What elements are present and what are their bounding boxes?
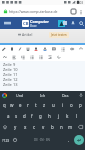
button[interactable]: ?123: [0, 133, 11, 147]
button[interactable]: k: [63, 110, 72, 121]
button[interactable]: l: [72, 110, 81, 121]
staticText: c: [33, 124, 36, 130]
button[interactable]: Backspace: [75, 121, 85, 133]
button[interactable]: a: [4, 110, 12, 121]
staticText: q: [3, 102, 6, 108]
button[interactable]: Paragraph tool 4: [27, 53, 36, 61]
button[interactable]: Jetzt testen: [49, 32, 69, 38]
button[interactable]: Format tool 4: [24, 45, 32, 53]
staticText: b: [51, 124, 54, 130]
button[interactable]: DE · IN · EN: [19, 133, 65, 147]
button[interactable]: e: [16, 99, 24, 110]
button[interactable]: d: [20, 110, 28, 121]
button[interactable]: Und: [8, 91, 31, 99]
button[interactable]: Enter: [72, 133, 85, 147]
staticText: z: [43, 102, 46, 108]
button[interactable]: Period: [65, 133, 72, 147]
button[interactable]: p: [76, 99, 85, 110]
button[interactable]: Tabs: [69, 7, 77, 15]
button[interactable]: m: [66, 121, 75, 133]
staticText: o: [70, 102, 73, 108]
staticText: s: [15, 113, 18, 119]
staticText: t: [35, 102, 37, 108]
button[interactable]: z: [40, 99, 49, 110]
staticText: i: [62, 102, 64, 108]
button[interactable]: Format tool 10: [76, 45, 85, 53]
staticText: Zeile 9: [3, 62, 16, 67]
button[interactable]: Search: [77, 19, 85, 27]
button[interactable]: Paragraph tool 7: [54, 53, 63, 61]
button[interactable]: Google Assistant: [0, 91, 8, 99]
staticText: h: [48, 113, 51, 119]
button[interactable]: Menu: [2, 18, 12, 28]
button[interactable]: c: [30, 121, 39, 133]
staticText: w: [10, 102, 14, 108]
button[interactable]: n: [57, 121, 66, 133]
button[interactable]: s: [12, 110, 20, 121]
button[interactable]: o: [67, 99, 76, 110]
button[interactable]: Format tool 9: [67, 45, 76, 53]
staticText: Computer: [30, 19, 49, 24]
button[interactable]: f: [28, 110, 36, 121]
staticText: ?123: [2, 138, 10, 143]
staticText: 10:03: [75, 1, 84, 5]
staticText: p: [79, 102, 82, 108]
button[interactable]: Format tool 7: [49, 45, 58, 53]
staticText: v: [42, 124, 45, 130]
button[interactable]: y: [10, 121, 20, 133]
button[interactable]: Ich: [31, 91, 54, 99]
button[interactable]: Account: [69, 19, 77, 27]
button[interactable]: Format tool 2: [8, 45, 16, 53]
staticText: r: [27, 102, 29, 108]
staticText: .: [68, 137, 70, 143]
button[interactable]: x: [20, 121, 30, 133]
button[interactable]: g: [36, 110, 45, 121]
staticText: Zeile 12: [3, 77, 18, 82]
staticText: Zeile 11: [3, 72, 18, 77]
button[interactable]: Format tool 5: [32, 45, 40, 53]
staticText: f: [31, 113, 33, 119]
staticText: x: [24, 124, 27, 130]
staticText: n: [60, 124, 63, 130]
button[interactable]: Format tool 8: [58, 45, 67, 53]
staticText: m: [68, 124, 73, 130]
button[interactable]: h: [45, 110, 54, 121]
button[interactable]: Paragraph tool 2: [9, 53, 18, 61]
button[interactable]: u: [49, 99, 58, 110]
button[interactable]: Voice input: [77, 91, 85, 99]
button[interactable]: Paragraph tool 1: [0, 53, 9, 61]
button[interactable]: Paragraph tool 5: [36, 53, 45, 61]
button[interactable]: Format tool 3: [16, 45, 24, 53]
button[interactable]: t: [32, 99, 40, 110]
button[interactable]: Shift: [0, 121, 10, 133]
button[interactable]: Sections: [61, 19, 69, 27]
button[interactable]: Format tool 6: [40, 45, 49, 53]
button[interactable]: Paragraph tool 6: [45, 53, 54, 61]
staticText: u: [52, 102, 55, 108]
button[interactable]: r: [24, 99, 32, 110]
staticText: d: [23, 113, 26, 119]
staticText: g: [39, 113, 42, 119]
staticText: Artikel: [22, 32, 33, 37]
button[interactable]: Emoji: [11, 133, 19, 147]
staticText: j: [58, 113, 60, 119]
staticText: Das: [62, 93, 69, 98]
staticText: https://www.computerbase.de: [9, 9, 58, 14]
button[interactable]: i: [58, 99, 67, 110]
button[interactable]: q: [0, 99, 8, 110]
button[interactable]: w: [8, 99, 16, 110]
button[interactable]: Das: [54, 91, 77, 99]
staticText: Base: [30, 24, 37, 28]
button[interactable]: Format tool 1: [0, 45, 8, 53]
button[interactable]: v: [39, 121, 48, 133]
button[interactable]: b: [48, 121, 57, 133]
button[interactable]: Paragraph tool 3: [18, 53, 27, 61]
button[interactable]: Address bar: [0, 5, 85, 17]
staticText: DE · IN · EN: [34, 138, 50, 142]
button[interactable]: More options: [77, 8, 84, 15]
staticText: Zeile 13: [3, 82, 18, 87]
button[interactable]: Artikel: [17, 32, 34, 37]
staticText: e: [19, 102, 22, 108]
staticText: l: [76, 113, 78, 119]
button[interactable]: j: [54, 110, 63, 121]
